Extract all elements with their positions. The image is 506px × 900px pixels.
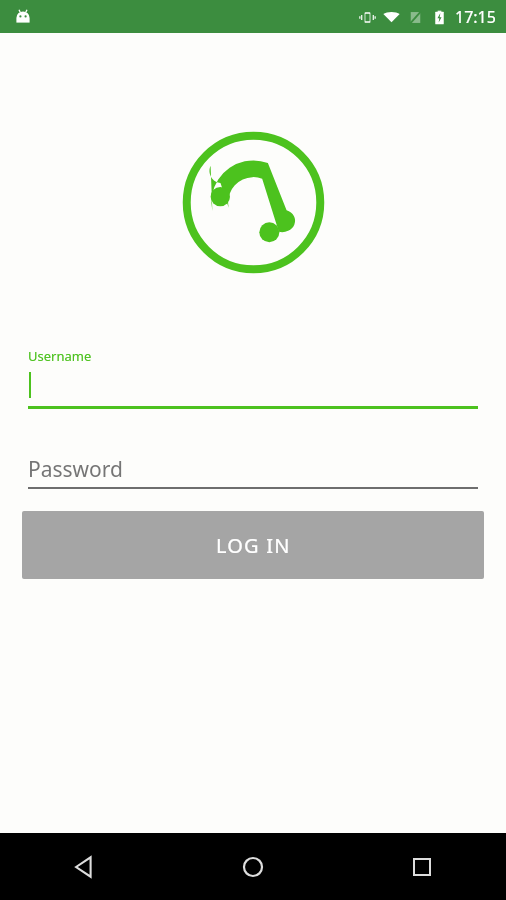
button[interactable]: LOG IN	[22, 511, 484, 579]
staticText: 17:15	[455, 6, 496, 28]
staticText: LOG IN	[216, 532, 291, 559]
other: App logo	[181, 130, 326, 275]
staticText: Username	[28, 347, 92, 365]
button[interactable]	[28, 365, 478, 409]
button[interactable]: Back	[0, 833, 168, 900]
button[interactable]: Recent apps	[337, 833, 506, 900]
button[interactable]: Home	[168, 833, 337, 900]
button[interactable]: Password	[28, 449, 478, 489]
staticText: Password	[28, 455, 123, 484]
